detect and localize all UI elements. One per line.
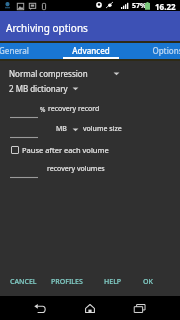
button[interactable]: HELP — [100, 273, 126, 291]
button[interactable]: Advanced — [52, 43, 129, 59]
button[interactable]: OK — [139, 273, 157, 291]
staticText: Pause after each volume — [22, 145, 109, 155]
staticText: 16.22 — [155, 1, 176, 12]
button[interactable]: Back — [28, 296, 52, 320]
staticText: PROFILES — [51, 277, 83, 287]
staticText: volume size — [83, 124, 122, 134]
button[interactable]: General — [0, 43, 52, 59]
staticText: Advanced — [72, 45, 110, 56]
button[interactable]: Home — [78, 296, 102, 320]
staticText: recovery record — [48, 104, 100, 114]
button[interactable]: PROFILES — [47, 273, 87, 291]
staticText: OK — [143, 277, 153, 287]
staticText: Archiving options — [6, 21, 88, 35]
staticText: Options — [152, 45, 180, 56]
button[interactable] — [10, 110, 38, 118]
staticText: recovery volumes — [47, 164, 105, 174]
staticText: MB — [56, 124, 67, 134]
button[interactable]: Normal compression — [9, 68, 88, 79]
staticText: CANCEL — [10, 277, 37, 287]
button[interactable]: Options — [129, 43, 180, 59]
button[interactable] — [10, 170, 38, 178]
button[interactable]: MB — [56, 124, 79, 134]
staticText: HELP — [104, 277, 122, 287]
button[interactable]: CANCEL — [6, 273, 41, 291]
button[interactable]: Pause after each volume — [11, 145, 109, 155]
button[interactable] — [10, 130, 38, 138]
staticText: 57% — [132, 1, 147, 11]
staticText: 2 MB dictionary — [9, 83, 68, 94]
staticText: % — [40, 105, 46, 114]
staticText: Normal compression — [9, 68, 88, 79]
staticText: General — [0, 45, 29, 56]
button[interactable]: Recent apps — [128, 296, 152, 320]
button[interactable]: 2 MB dictionary — [9, 83, 68, 94]
